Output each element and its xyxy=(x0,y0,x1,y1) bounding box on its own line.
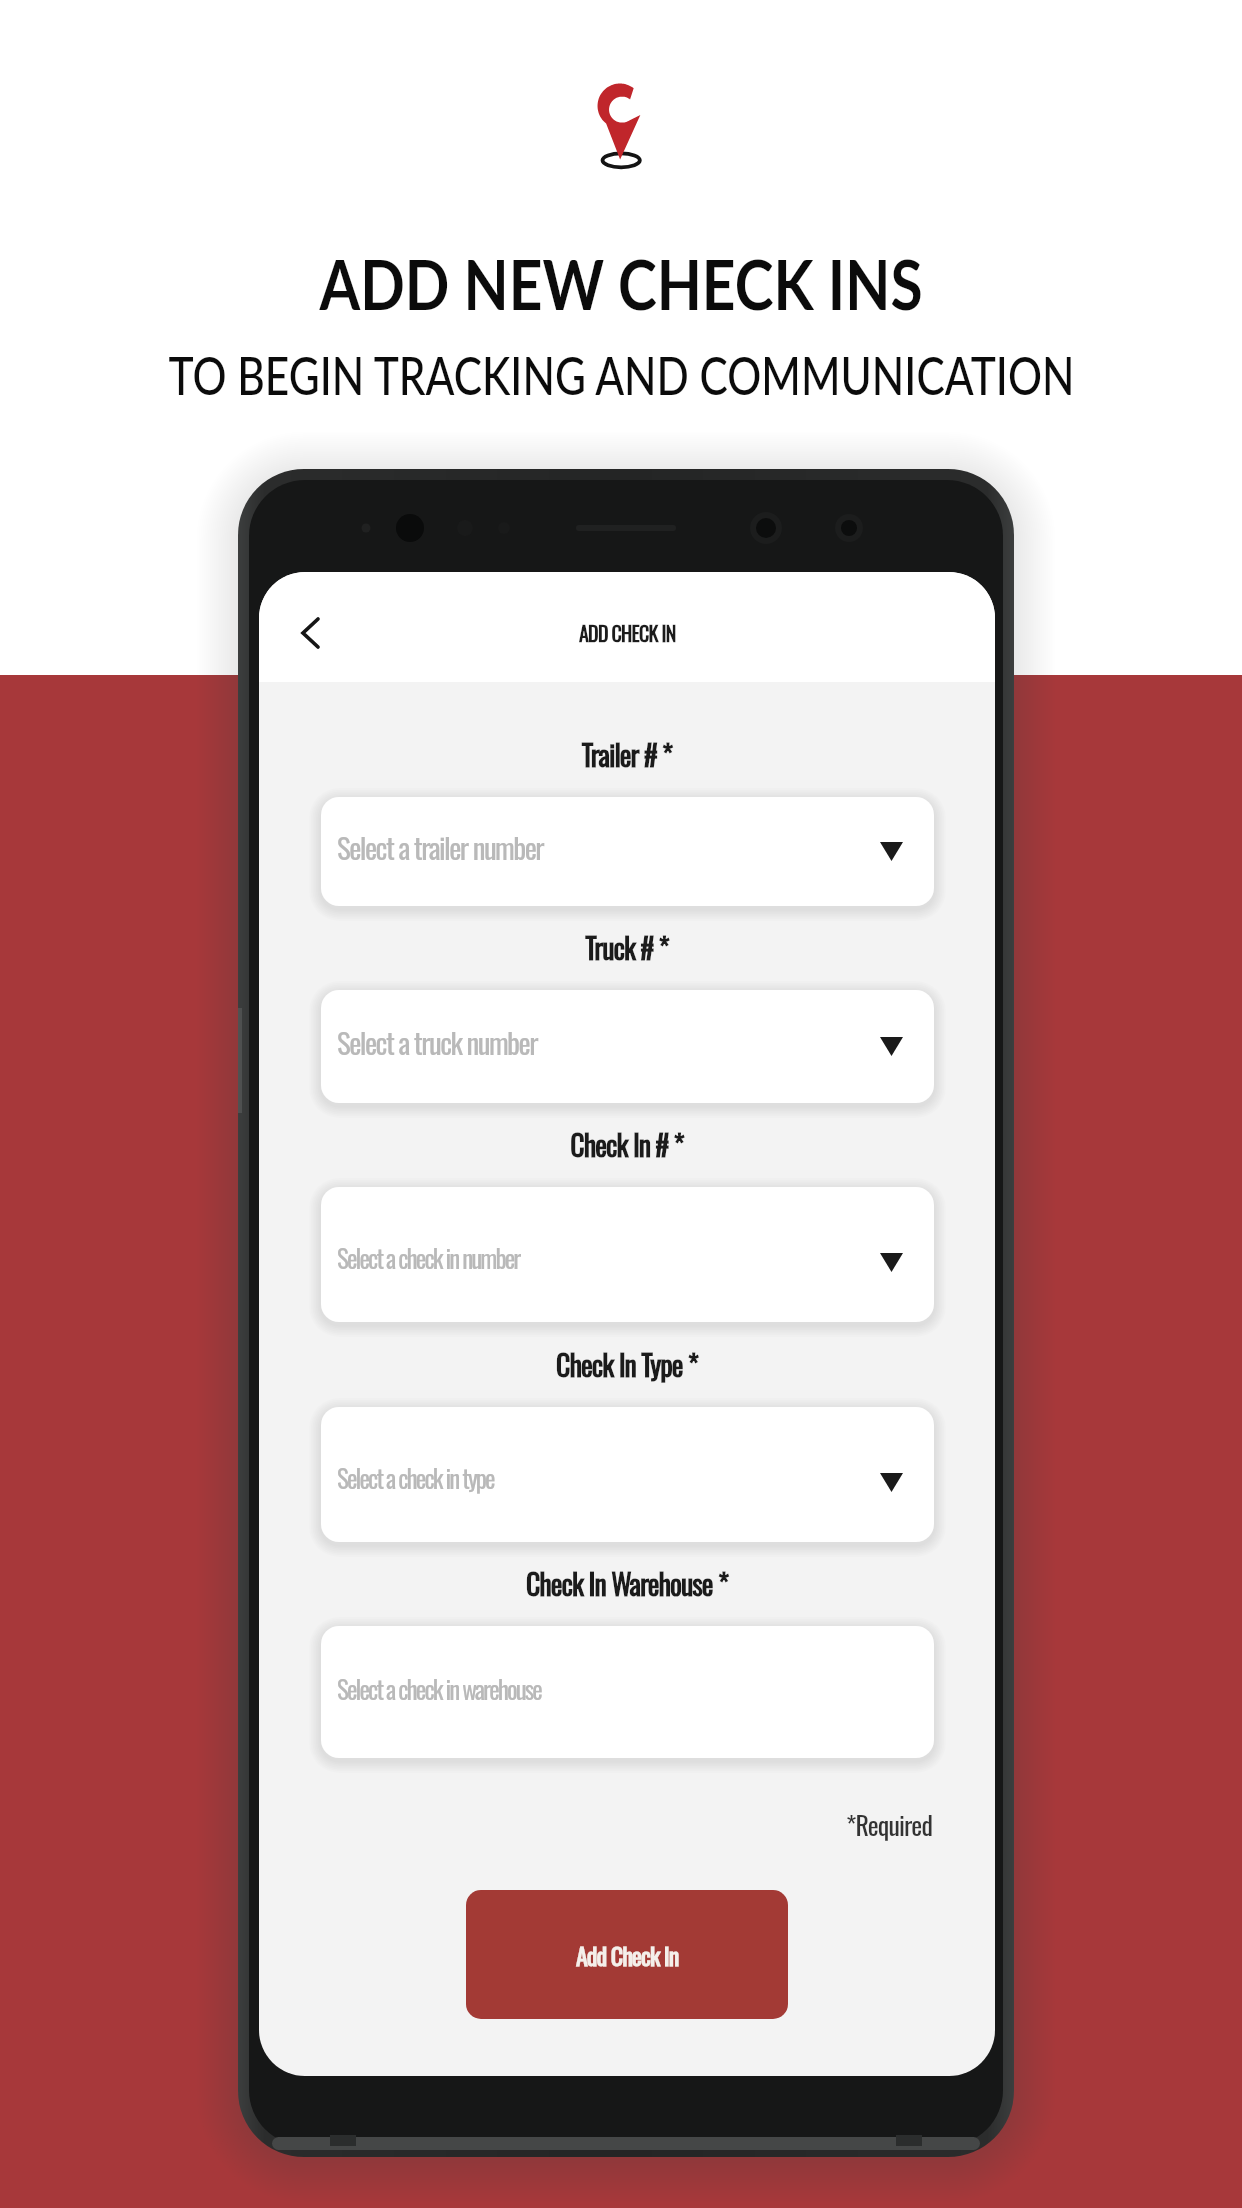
button[interactable]: Select a trailer number xyxy=(321,797,934,906)
button[interactable]: Select a truck number xyxy=(321,990,934,1103)
staticText: Select a truck number xyxy=(337,1020,537,1063)
staticText: Select a check in number xyxy=(337,1239,520,1276)
staticText: Select a check in type xyxy=(337,1459,494,1496)
staticText: Truck # * xyxy=(259,927,995,968)
button[interactable]: Add Check In xyxy=(466,1890,788,2019)
button[interactable]: Back xyxy=(282,604,340,662)
button[interactable]: Select a check in warehouse xyxy=(321,1626,934,1758)
staticText: Select a check in warehouse xyxy=(337,1670,541,1707)
staticText: TO BEGIN TRACKING AND COMMUNICATION xyxy=(168,343,1074,407)
staticText: Add Check In xyxy=(576,1937,679,1973)
button[interactable]: Select a check in type xyxy=(321,1407,934,1542)
staticText: *Required xyxy=(259,1805,932,1844)
staticText: Check In Warehouse * xyxy=(259,1563,995,1604)
staticText: ADD CHECK IN xyxy=(579,618,676,648)
staticText: Check In # * xyxy=(259,1124,995,1165)
staticText: Trailer # * xyxy=(259,734,995,775)
staticText: Check In Type * xyxy=(259,1344,995,1385)
staticText: ADD NEW CHECK INS xyxy=(319,243,923,325)
staticText: Select a trailer number xyxy=(337,825,544,868)
button[interactable]: Select a check in number xyxy=(321,1187,934,1322)
